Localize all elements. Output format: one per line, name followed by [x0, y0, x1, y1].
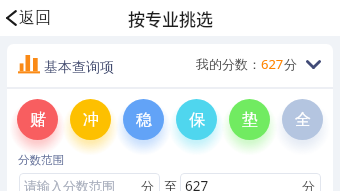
- staticText: 全: [295, 110, 311, 130]
- staticText: 按专业挑选: [128, 6, 213, 31]
- button[interactable]: 稳: [123, 99, 164, 140]
- staticText: 垫: [242, 110, 258, 130]
- staticText: 保: [189, 110, 205, 130]
- other: 展开: [306, 60, 321, 69]
- button[interactable]: 冲: [70, 99, 111, 140]
- staticText: 627: [185, 177, 209, 191]
- staticText: 分: [302, 178, 315, 191]
- staticText: 赌: [30, 110, 46, 130]
- button[interactable]: 请输入分数范围: [19, 173, 160, 191]
- staticText: 至: [164, 178, 177, 191]
- button[interactable]: 我的分数：: [196, 54, 321, 74]
- button[interactable]: 赌: [17, 99, 58, 140]
- staticText: 分数范围: [18, 153, 64, 167]
- other: 返回: [6, 10, 17, 26]
- button[interactable]: 全: [282, 99, 323, 140]
- staticText: 627: [261, 55, 284, 73]
- staticText: 基本查询项: [44, 59, 114, 77]
- button[interactable]: 保: [176, 99, 217, 140]
- button[interactable]: 返回: [6, 8, 51, 28]
- staticText: 请输入分数范围: [24, 178, 115, 191]
- staticText: 返回: [19, 8, 51, 28]
- staticText: 我的分数：: [196, 56, 261, 72]
- staticText: 分: [141, 178, 154, 191]
- staticText: 冲: [83, 110, 99, 130]
- button[interactable]: 垫: [229, 99, 270, 140]
- staticText: 分: [284, 56, 297, 72]
- button[interactable]: 627: [180, 173, 321, 191]
- staticText: 稳: [136, 110, 152, 130]
